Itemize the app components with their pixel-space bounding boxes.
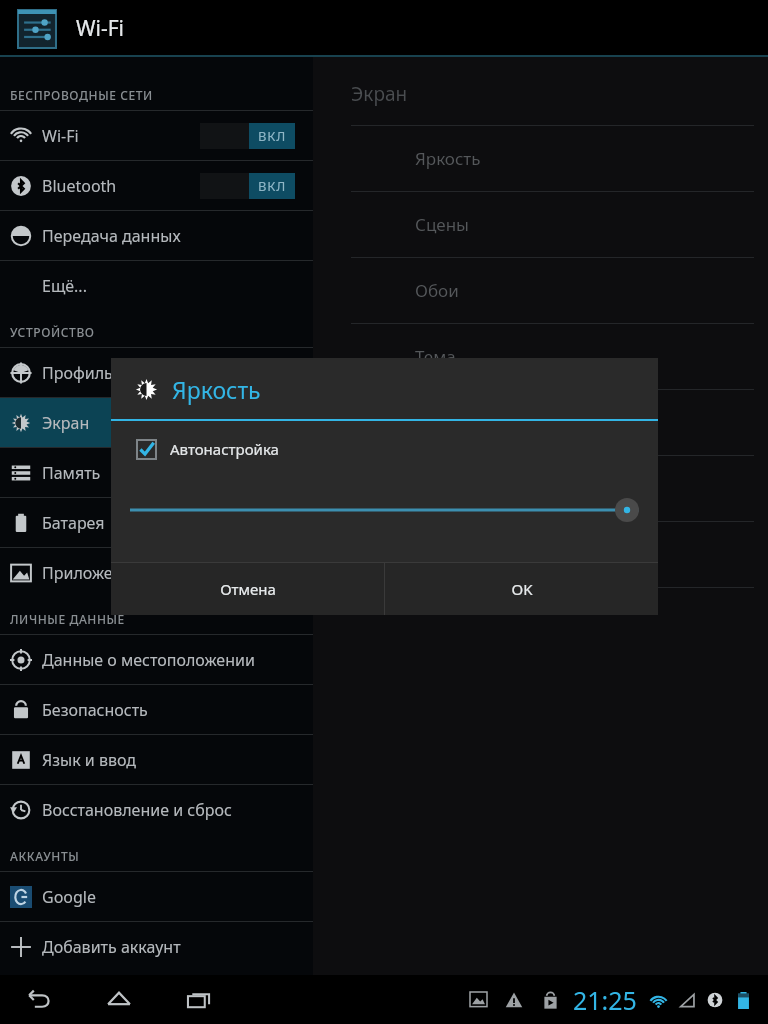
button[interactable]: Bluetooth bbox=[0, 161, 313, 210]
button[interactable]: OK bbox=[385, 563, 658, 615]
staticText: Приложения bbox=[42, 562, 142, 584]
staticText: Ещё... bbox=[42, 275, 87, 297]
staticText: Wi-Fi bbox=[76, 14, 125, 43]
button[interactable]: Язык и ввод bbox=[0, 735, 313, 784]
staticText: Данные о местоположении bbox=[42, 649, 255, 671]
button[interactable]: Профиль звука bbox=[0, 348, 313, 397]
button[interactable]: Back bbox=[18, 979, 60, 1021]
staticText: OK bbox=[511, 579, 533, 599]
button[interactable]: Recent apps bbox=[178, 979, 220, 1021]
button[interactable]: Добавить аккаунт bbox=[0, 922, 313, 971]
button[interactable]: ВКЛ bbox=[200, 123, 295, 149]
staticText: Обои bbox=[415, 279, 459, 302]
button[interactable]: Заставка bbox=[313, 456, 768, 521]
staticText: ЛИЧНЫЕ ДАННЫЕ bbox=[10, 611, 125, 627]
button[interactable]: Ещё... bbox=[0, 261, 313, 310]
button[interactable]: Сцены bbox=[313, 192, 768, 257]
staticText: Сцены bbox=[415, 213, 469, 236]
staticText: Яркость bbox=[172, 374, 261, 405]
staticText: Добавить аккаунт bbox=[42, 936, 181, 958]
staticText: Яркость bbox=[415, 147, 481, 170]
button[interactable]: Спящий режим bbox=[313, 390, 768, 455]
staticText: Экран bbox=[42, 412, 90, 434]
staticText: Размер шрифта bbox=[415, 543, 546, 566]
staticText: 21:25 bbox=[573, 983, 637, 1017]
staticText: Отмена bbox=[220, 579, 276, 599]
button[interactable]: Яркость bbox=[313, 126, 768, 191]
button[interactable]: Brightness slider bbox=[111, 493, 658, 527]
staticText: Передача данных bbox=[42, 225, 181, 247]
button[interactable]: Размер шрифта bbox=[313, 522, 768, 587]
staticText: Безопасность bbox=[42, 699, 148, 721]
staticText: Восстановление и сброс bbox=[42, 799, 232, 821]
staticText: Bluetooth bbox=[42, 175, 117, 197]
button[interactable]: Батарея bbox=[0, 498, 313, 547]
staticText: АККАУНТЫ bbox=[10, 848, 80, 864]
staticText: ВКЛ bbox=[258, 177, 287, 195]
staticText: УСТРОЙСТВО bbox=[10, 324, 95, 340]
staticText: БЕСПРОВОДНЫЕ СЕТИ bbox=[10, 87, 153, 103]
button[interactable]: Данные о местоположении bbox=[0, 635, 313, 684]
staticText: Память bbox=[42, 462, 101, 484]
button[interactable]: Память bbox=[0, 448, 313, 497]
button[interactable]: Отмена bbox=[111, 563, 384, 615]
staticText: Google bbox=[42, 886, 97, 908]
staticText: Экран bbox=[351, 81, 408, 107]
button[interactable]: Обои bbox=[313, 258, 768, 323]
button[interactable]: Settings app icon bbox=[18, 10, 56, 48]
button[interactable]: Передача данных bbox=[0, 211, 313, 260]
button[interactable]: Приложения bbox=[0, 548, 313, 597]
staticText: ВКЛ bbox=[258, 127, 287, 145]
button[interactable]: Автонастройка bbox=[137, 439, 279, 459]
staticText: Wi-Fi bbox=[42, 125, 79, 147]
staticText: Профиль звука bbox=[42, 362, 159, 384]
button[interactable]: Wi-Fi bbox=[0, 111, 313, 160]
button[interactable]: Home bbox=[98, 979, 140, 1021]
button[interactable]: Восстановление и сброс bbox=[0, 785, 313, 834]
staticText: Спящий режим bbox=[415, 411, 543, 434]
button[interactable]: Google bbox=[0, 872, 313, 921]
button[interactable]: Тема bbox=[313, 324, 768, 389]
button[interactable]: ВКЛ bbox=[200, 173, 295, 199]
staticText: Батарея bbox=[42, 512, 105, 534]
staticText: Тема bbox=[415, 345, 456, 368]
staticText: Язык и ввод bbox=[42, 749, 137, 771]
staticText: Автонастройка bbox=[170, 439, 279, 459]
button[interactable]: Экран bbox=[0, 398, 313, 447]
button[interactable]: Безопасность bbox=[0, 685, 313, 734]
